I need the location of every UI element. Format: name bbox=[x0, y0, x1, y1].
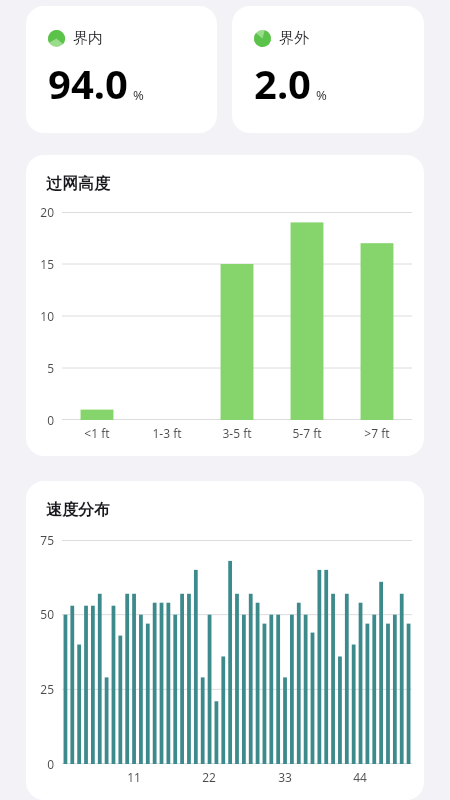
button[interactable]: Pie chart bbox=[232, 6, 424, 133]
staticText: 44 bbox=[353, 769, 367, 785]
staticText: 75 bbox=[40, 532, 54, 548]
staticText: 界外 bbox=[279, 29, 309, 48]
button[interactable]: 过网高度 bbox=[26, 155, 424, 456]
staticText: 10 bbox=[40, 308, 54, 324]
staticText: 5-7 ft bbox=[292, 425, 322, 441]
staticText: 94.0 bbox=[48, 56, 128, 110]
staticText: 20 bbox=[40, 204, 54, 220]
staticText: 15 bbox=[40, 256, 54, 272]
staticText: 0 bbox=[47, 756, 54, 772]
staticText: 2.0 bbox=[254, 56, 311, 110]
staticText: % bbox=[316, 86, 327, 104]
staticText: 速度分布 bbox=[46, 500, 110, 520]
staticText: 5 bbox=[47, 360, 54, 376]
staticText: 3-5 ft bbox=[222, 425, 252, 441]
staticText: 1-3 ft bbox=[152, 425, 182, 441]
other: Pie chart bbox=[48, 30, 65, 47]
staticText: 界内 bbox=[73, 29, 103, 48]
staticText: % bbox=[133, 86, 144, 104]
staticText: <1 ft bbox=[84, 425, 110, 441]
staticText: 22 bbox=[202, 769, 216, 785]
staticText: 25 bbox=[40, 681, 54, 697]
staticText: 过网高度 bbox=[46, 174, 110, 194]
staticText: >7 ft bbox=[364, 425, 390, 441]
staticText: 0 bbox=[47, 412, 54, 428]
other: Pie chart bbox=[254, 30, 271, 47]
staticText: 50 bbox=[40, 606, 54, 622]
button[interactable]: Pie chart bbox=[26, 6, 217, 133]
staticText: 33 bbox=[278, 769, 292, 785]
button[interactable]: 速度分布 bbox=[26, 481, 424, 800]
staticText: 11 bbox=[127, 769, 141, 785]
